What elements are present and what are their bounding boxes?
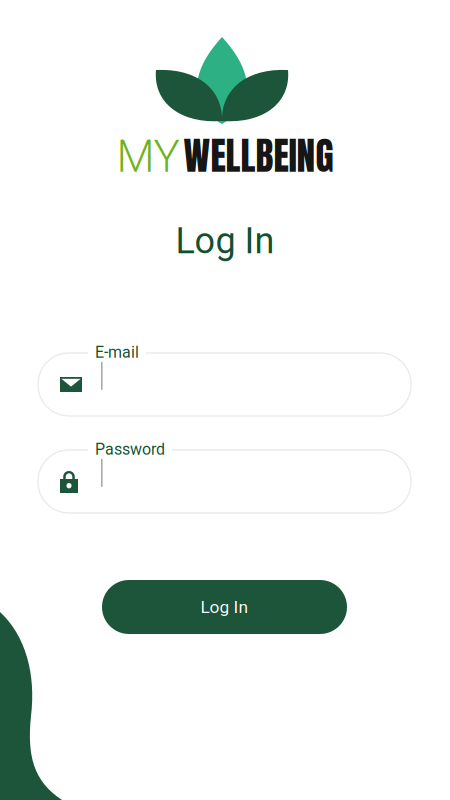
button[interactable]: Log In [102, 580, 347, 634]
staticText: E-mail [95, 343, 139, 362]
staticText: MY [116, 131, 179, 183]
staticText: Log In [175, 220, 274, 262]
staticText: WELLBEING [183, 128, 333, 184]
staticText: Log In [200, 597, 248, 617]
staticText: Password [95, 440, 165, 459]
